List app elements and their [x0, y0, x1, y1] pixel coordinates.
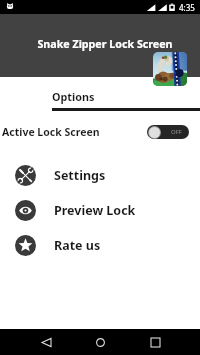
- button[interactable]: Home: [87, 329, 113, 355]
- staticText: Snake Zipper Lock Screen: [37, 37, 173, 52]
- button[interactable]: Preview Lock: [0, 193, 200, 228]
- staticText: 4:35: [179, 2, 195, 13]
- button[interactable]: App icon: [153, 52, 187, 86]
- staticText: Preview Lock: [54, 202, 136, 219]
- button[interactable]: Active Lock Screen toggle: [147, 125, 189, 139]
- staticText: Active Lock Screen: [2, 125, 100, 139]
- staticText: Settings: [54, 167, 106, 184]
- button[interactable]: Settings: [0, 158, 200, 193]
- button[interactable]: Recents: [142, 329, 168, 355]
- button[interactable]: Back: [33, 329, 59, 355]
- staticText: OFF: [171, 128, 182, 136]
- button[interactable]: Active Lock Screen: [0, 120, 200, 144]
- button[interactable]: Rate us: [0, 228, 200, 263]
- staticText: Rate us: [54, 237, 101, 254]
- staticText: Options: [52, 89, 95, 104]
